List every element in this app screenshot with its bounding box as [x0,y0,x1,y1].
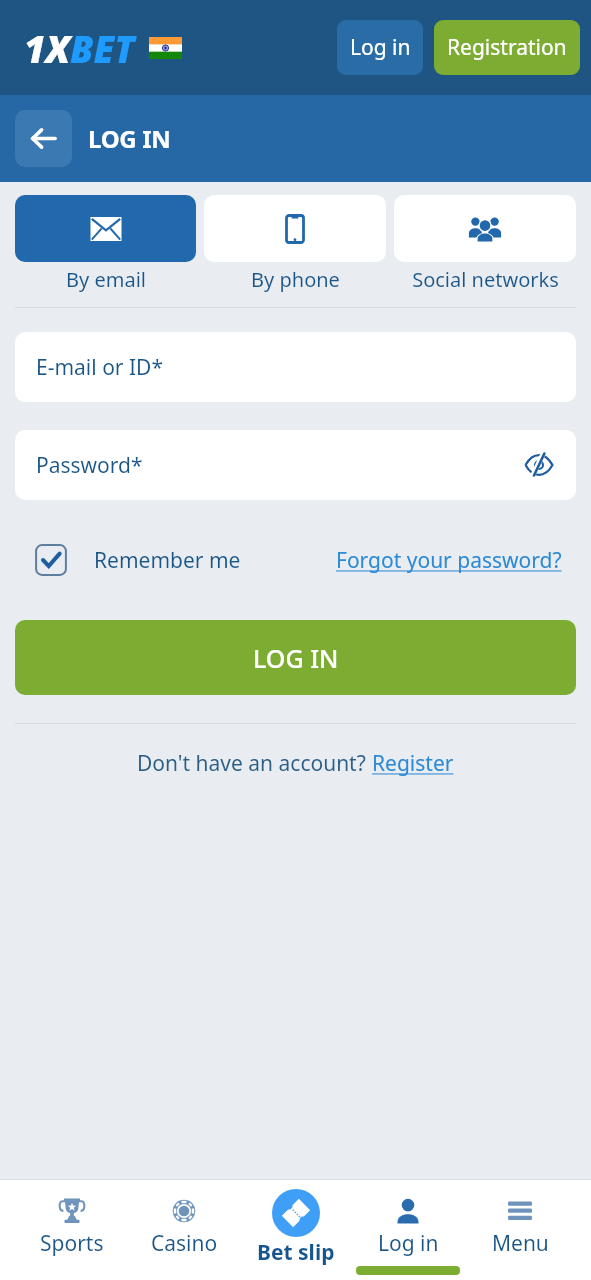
button[interactable]: Log in [337,20,423,75]
staticText: Casino [151,1229,218,1258]
staticText: LOG IN [88,122,171,155]
staticText: By email [66,266,146,293]
staticText: Log in [350,33,411,62]
staticText: Log in [378,1229,439,1258]
button[interactable]: By email [15,195,196,293]
button[interactable]: Back [15,110,72,167]
staticText: Menu [492,1229,549,1258]
staticText: LOG IN [253,641,339,675]
staticText: Sports [40,1229,104,1258]
staticText: Registration [447,33,567,62]
button[interactable]: By phone [204,195,386,293]
staticText: Social networks [412,266,559,293]
button[interactable]: Bet slip [240,1179,352,1280]
button[interactable]: LOG IN [15,620,576,695]
staticText: Bet slip [257,1238,335,1267]
staticText: Forgot your password? [336,546,562,575]
staticText: Don't have an account? [137,749,372,778]
button[interactable]: Register [372,749,454,778]
button[interactable]: E-mail or ID* [15,332,576,402]
button[interactable]: Social networks [394,195,576,293]
button[interactable]: Remember me [35,544,241,576]
staticText: 1X [24,23,70,73]
button[interactable]: Log in [352,1179,464,1280]
staticText: E-mail or ID* [36,353,164,382]
staticText: Remember me [94,546,241,575]
button[interactable]: Show password [520,446,558,484]
staticText: Register [372,749,454,778]
button[interactable]: Menu [464,1179,576,1280]
button[interactable]: Registration [434,20,580,75]
staticText: Password* [36,451,143,480]
button[interactable]: Sports [15,1179,128,1280]
staticText: BET [70,23,135,73]
button[interactable]: Casino [128,1179,240,1280]
button[interactable]: Forgot your password? [336,546,562,575]
button[interactable]: Password* [15,430,576,500]
staticText: By phone [251,266,340,293]
